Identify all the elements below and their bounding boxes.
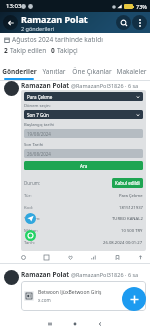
staticText: 10 500 TRY xyxy=(121,228,143,234)
button[interactable]: Gönderiler xyxy=(0,67,38,80)
staticText: Miktar: xyxy=(24,228,38,234)
button[interactable]: Ara xyxy=(24,161,143,170)
button[interactable]: Like xyxy=(66,253,75,262)
staticText: 1815121937 xyxy=(119,205,143,211)
staticText: Ramazan Polat xyxy=(21,13,88,25)
staticText: Gönderiler xyxy=(2,67,37,76)
staticText: Yöntem: xyxy=(24,216,41,222)
staticText: Para Çekme xyxy=(119,193,143,199)
button[interactable]: More options xyxy=(132,15,147,30)
button[interactable]: Telegram xyxy=(25,213,36,224)
staticText: 26.08.2024 00:01:27 xyxy=(103,240,143,246)
button[interactable]: Reply xyxy=(19,253,28,262)
button[interactable]: Back xyxy=(95,319,105,329)
button[interactable]: WhatsApp xyxy=(25,230,36,241)
staticText: Kod: xyxy=(24,205,33,211)
staticText: Durum: xyxy=(24,180,41,186)
staticText: @RamazanPol31826 · 6 sa xyxy=(71,271,139,278)
staticText: Ara xyxy=(80,163,88,169)
staticText: Makaleler xyxy=(116,67,147,76)
button[interactable]: Betwoon ljüxBetwoon Giriş xyxy=(21,281,146,311)
button[interactable]: Recents xyxy=(45,319,55,329)
staticText: 19/08/2024 xyxy=(27,131,51,137)
button[interactable]: Öne Çıkanlar xyxy=(70,67,113,80)
button[interactable]: Bookmark xyxy=(113,253,122,262)
staticText: Kabul edildi xyxy=(115,180,140,186)
button[interactable]: Makaleler xyxy=(113,67,150,80)
staticText: Takip edilen xyxy=(10,46,47,55)
button[interactable]: Para Çekme xyxy=(21,90,146,251)
staticText: Takipçi xyxy=(57,46,78,55)
staticText: Tarih: xyxy=(24,240,35,246)
button[interactable]: Home xyxy=(70,319,80,329)
staticText: Dönem seçin: xyxy=(24,103,51,109)
staticText: Öne Çıkanlar xyxy=(72,67,112,76)
button[interactable]: Share xyxy=(136,253,145,262)
staticText: Ramazan Polat xyxy=(21,81,70,90)
staticText: Son 7 Gün xyxy=(27,112,49,118)
staticText: Başlangıç tarihi xyxy=(24,122,55,128)
staticText: Yanıtlar xyxy=(42,67,66,76)
staticText: 26/08/2024 xyxy=(27,151,51,157)
button[interactable]: Repost xyxy=(42,253,51,262)
button[interactable]: Search xyxy=(116,15,131,30)
staticText: @RamazanPol31826 · 6 sa xyxy=(71,82,139,89)
button[interactable]: Yanıtlar xyxy=(38,67,70,80)
staticText: Son Tarihi xyxy=(24,142,44,148)
button[interactable]: Back xyxy=(3,15,18,30)
staticText: 2 xyxy=(4,46,10,55)
staticText: Betwoon ljüxBetwoon Giriş xyxy=(38,289,102,296)
staticText: 73% xyxy=(136,3,147,10)
staticText: Ağustos 2024 tarihinde katıldı xyxy=(12,35,103,44)
button[interactable]: Views xyxy=(89,253,98,262)
staticText: 13:03 xyxy=(6,2,22,10)
button[interactable]: Compose post xyxy=(122,287,146,311)
staticText: TURBO KANAL2 xyxy=(112,216,143,222)
staticText: Tür: xyxy=(24,193,32,199)
staticText: x.com xyxy=(38,297,51,303)
staticText: Para Çekme xyxy=(27,94,53,100)
staticText: 2 gönderileri xyxy=(21,25,55,32)
staticText: 0 xyxy=(51,46,57,55)
staticText: Ramazan Polat xyxy=(21,270,70,279)
